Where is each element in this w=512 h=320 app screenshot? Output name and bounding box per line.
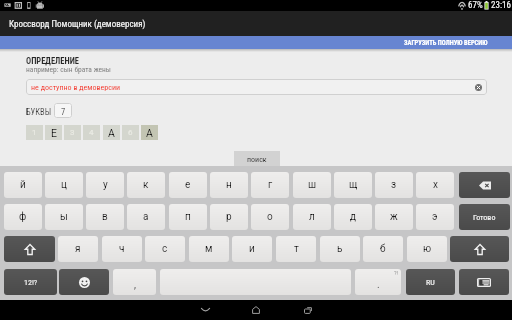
button[interactable]: б <box>363 236 403 262</box>
button[interactable]: о <box>251 204 289 230</box>
staticText: 67% <box>468 0 483 11</box>
staticText: ?! <box>394 270 399 276</box>
staticText: Е <box>51 127 57 139</box>
button[interactable]: з <box>375 172 413 198</box>
staticText: ы <box>60 211 68 223</box>
staticText: а <box>143 211 149 223</box>
button[interactable]: ы <box>45 204 83 230</box>
staticText: й <box>20 179 26 191</box>
staticText: Кроссворд Помощник (демоверсия) <box>9 19 146 30</box>
staticText: э <box>432 211 438 223</box>
button[interactable]: поиск <box>234 151 280 167</box>
button[interactable]: н <box>210 172 248 198</box>
button[interactable]: Главный экран <box>247 301 265 319</box>
button[interactable]: Символы <box>4 269 57 295</box>
staticText: например: сын брата жены <box>26 65 111 74</box>
button[interactable]: л <box>293 204 331 230</box>
staticText: ш <box>308 179 317 191</box>
button[interactable]: Верхний регистр <box>4 236 55 262</box>
button[interactable]: Обзор <box>299 301 317 319</box>
button[interactable]: й <box>4 172 42 198</box>
button[interactable]: ч <box>102 236 142 262</box>
button[interactable]: р <box>210 204 248 230</box>
button[interactable]: Верхний регистр <box>450 236 509 262</box>
staticText: 23:16 <box>491 0 511 11</box>
button[interactable]: 7 <box>54 103 72 118</box>
staticText: е <box>185 179 191 191</box>
button[interactable]: Готово <box>459 204 510 230</box>
button[interactable]: щ <box>334 172 372 198</box>
staticText: к <box>143 179 149 191</box>
button[interactable]: ф <box>4 204 42 230</box>
button[interactable]: ц <box>45 172 83 198</box>
staticText: х <box>433 179 438 191</box>
button[interactable]: т <box>276 236 316 262</box>
button[interactable]: г <box>251 172 289 198</box>
staticText: з <box>391 179 397 191</box>
button[interactable]: А <box>103 125 120 140</box>
staticText: ь <box>337 243 343 255</box>
button[interactable]: Е <box>45 125 62 140</box>
button[interactable]: 6 <box>122 125 139 140</box>
staticText: г <box>268 179 273 191</box>
staticText: 3 <box>70 128 75 137</box>
staticText: А <box>108 127 115 139</box>
button[interactable]: 4 <box>83 125 100 140</box>
staticText: щ <box>349 179 358 191</box>
button[interactable]: э <box>416 204 454 230</box>
staticText: ОПРЕДЕЛЕНИЕ <box>26 56 80 66</box>
button[interactable]: е <box>169 172 207 198</box>
staticText: в <box>102 211 108 223</box>
button[interactable]: х <box>416 172 454 198</box>
staticText: и <box>249 243 255 255</box>
staticText: ф <box>19 211 27 223</box>
staticText: ч <box>119 243 125 255</box>
button[interactable]: с <box>145 236 185 262</box>
button[interactable]: ж <box>375 204 413 230</box>
staticText: м <box>205 243 213 255</box>
button[interactable]: ш <box>293 172 331 198</box>
staticText: RU <box>426 278 435 287</box>
button[interactable]: м <box>189 236 229 262</box>
staticText: ж <box>390 211 398 223</box>
button[interactable] <box>160 269 351 295</box>
button[interactable]: Настройки клавиатуры <box>459 269 509 295</box>
staticText: н <box>226 179 232 191</box>
button[interactable]: 3 <box>64 125 81 140</box>
button[interactable]: и <box>232 236 272 262</box>
button[interactable]: д <box>334 204 372 230</box>
staticText: ЗАГРУЗИТЬ ПОЛНУЮ ВЕРСИЮ <box>404 39 488 47</box>
staticText: ц <box>61 179 67 191</box>
staticText: 12!? <box>24 278 38 287</box>
button[interactable]: а <box>127 204 165 230</box>
button[interactable]: к <box>127 172 165 198</box>
button[interactable]: Назад <box>196 301 214 319</box>
other: Очистить <box>475 84 482 91</box>
button[interactable]: ь <box>320 236 360 262</box>
button[interactable]: Эмодзи <box>59 269 109 295</box>
button[interactable]: не доступно в демоверсии <box>26 79 487 95</box>
button[interactable]: , <box>113 269 156 295</box>
button[interactable]: Сменить язык <box>406 269 455 295</box>
button[interactable]: у <box>86 172 124 198</box>
button[interactable]: А <box>141 125 158 140</box>
staticText: о <box>267 211 273 223</box>
staticText: 6 <box>128 128 133 137</box>
staticText: поиск <box>247 155 267 164</box>
staticText: б <box>380 243 386 255</box>
staticText: , <box>134 279 136 291</box>
button[interactable]: Удалить <box>459 172 510 198</box>
button[interactable]: в <box>86 204 124 230</box>
staticText: т <box>294 243 299 255</box>
staticText: А <box>146 127 153 139</box>
staticText: 7 <box>61 107 66 117</box>
button[interactable]: п <box>169 204 207 230</box>
button[interactable]: ю <box>407 236 447 262</box>
staticText: не доступно в демоверсии <box>31 83 121 92</box>
button[interactable]: я <box>58 236 98 262</box>
button[interactable]: ЗАГРУЗИТЬ ПОЛНУЮ ВЕРСИЮ <box>0 36 512 49</box>
staticText: д <box>350 211 357 223</box>
button[interactable]: . <box>355 269 401 295</box>
staticText: р <box>226 211 232 223</box>
